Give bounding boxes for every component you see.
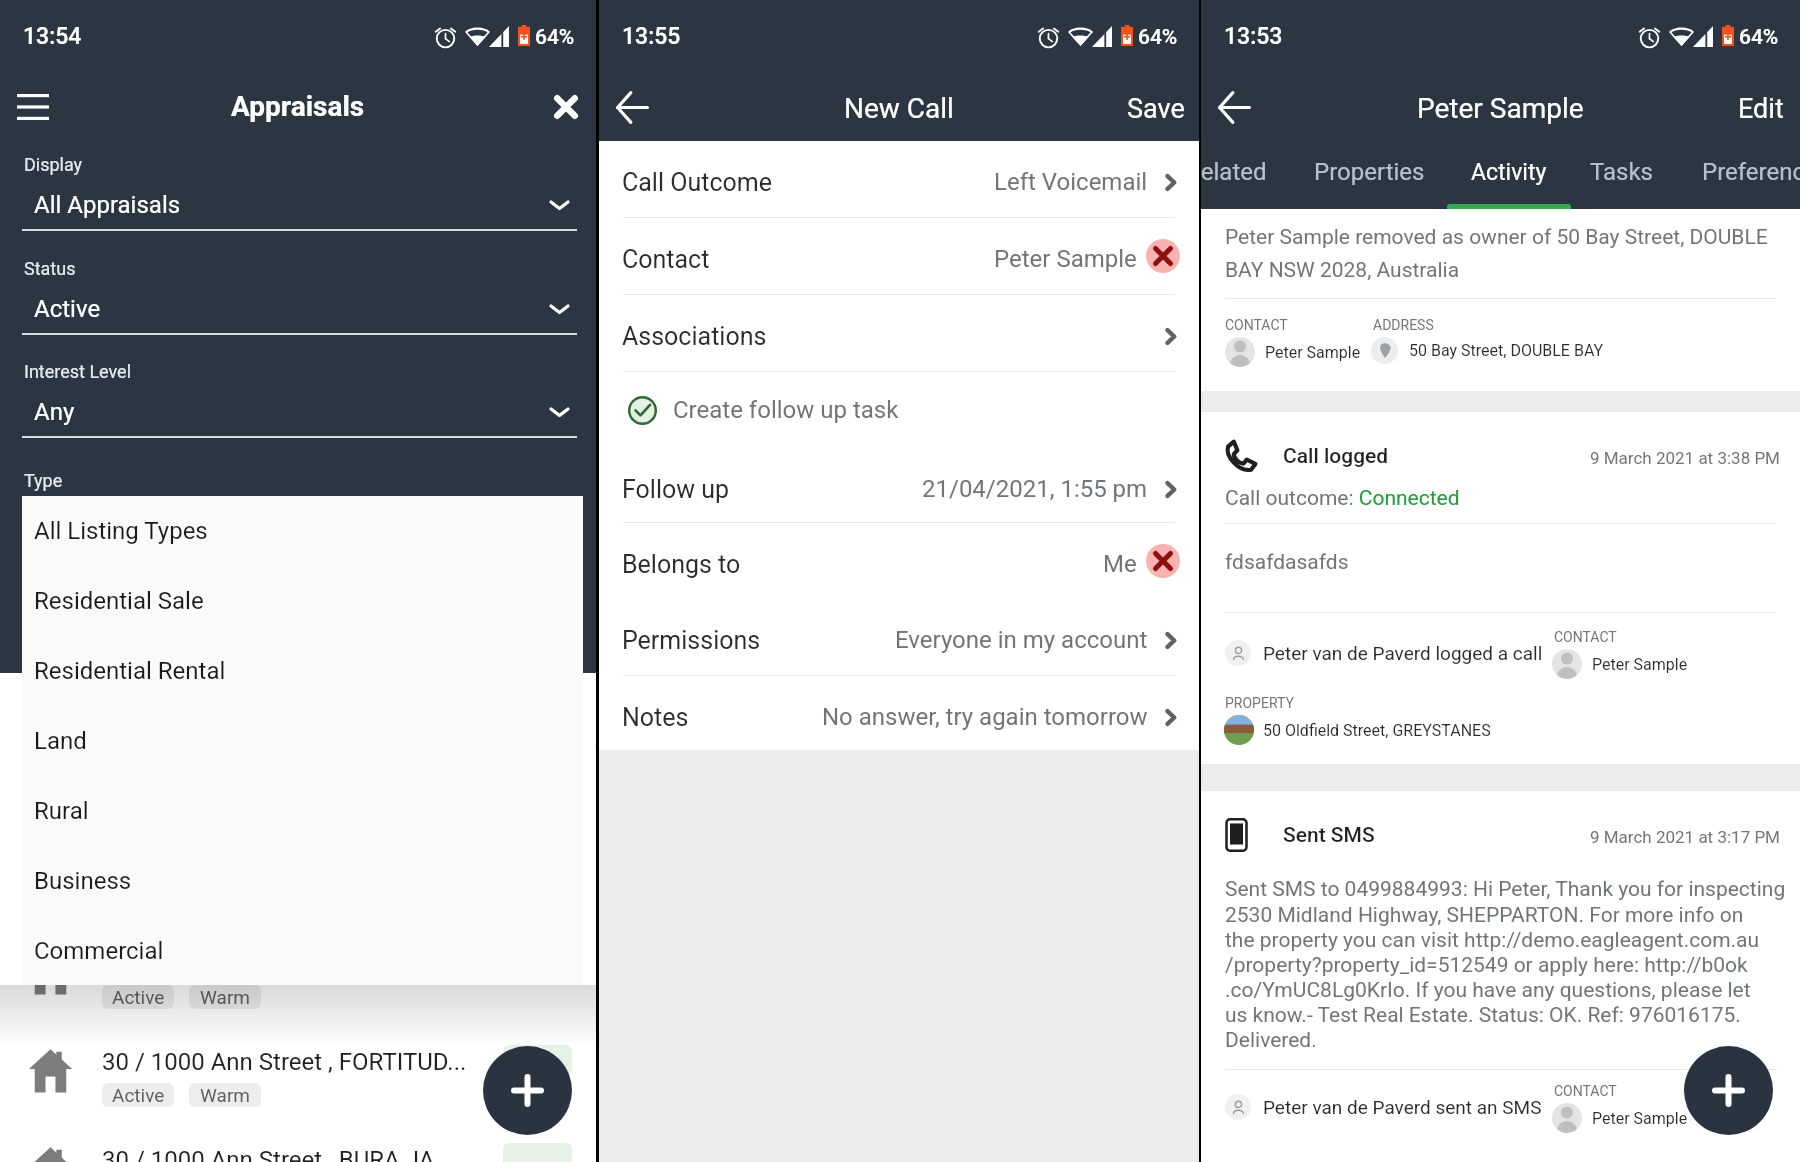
staticText: Peter Sample — [994, 245, 1137, 273]
button[interactable]: Permissions — [599, 602, 1199, 678]
staticText: 30 / 1000 Ann Street , BURA JA — [102, 1146, 502, 1162]
staticText: Contact — [622, 245, 710, 274]
staticText: Business — [34, 867, 132, 895]
button[interactable]: Save — [1127, 73, 1199, 141]
staticText: 13:53 — [1224, 23, 1283, 50]
button[interactable]: Menu — [1, 75, 65, 139]
staticText: Any — [34, 398, 75, 426]
staticText: Save — [1127, 93, 1185, 125]
button[interactable]: Commercial — [22, 916, 583, 985]
staticText: Sent SMS — [1283, 823, 1375, 848]
staticText: Permissions — [622, 626, 761, 655]
button[interactable]: Associations — [599, 298, 1199, 374]
staticText: Preferences — [1702, 158, 1800, 186]
staticText: Call Outcome — [622, 168, 772, 197]
staticText: All Appraisals — [34, 191, 181, 219]
button[interactable]: Tasks — [1580, 141, 1662, 209]
staticText: Follow up — [622, 475, 730, 504]
button[interactable]: Back — [1203, 76, 1265, 138]
staticText: 9 March 2021 at 3:38 PM — [1590, 448, 1780, 468]
staticText: All Listing Types — [34, 517, 208, 545]
staticText: Properties — [1314, 158, 1425, 186]
staticText: 30 / 1000 Ann Street , MARSDEN... — [102, 950, 502, 978]
button[interactable]: Interest Level — [0, 348, 596, 452]
staticText: Rural — [34, 797, 89, 825]
staticText: Notes — [622, 703, 689, 732]
button[interactable]: 30 / 1000 Ann Street , MARSDEN... — [0, 927, 596, 1025]
button[interactable]: Follow up — [599, 451, 1199, 527]
button[interactable]: Rural — [22, 776, 583, 846]
staticText: 50 Bay Street, DOUBLE BAY — [1409, 341, 1604, 360]
button[interactable]: Call Outcome — [599, 144, 1199, 220]
staticText: CONTACT — [1554, 1083, 1617, 1099]
button[interactable]: Display — [0, 141, 596, 245]
staticText: Interest Level — [24, 361, 132, 382]
button[interactable]: 30 / 1000 Ann Street , FORTITUD... — [0, 1025, 596, 1123]
staticText: Appraisals — [231, 90, 365, 123]
staticText: PROPERTY — [1225, 695, 1294, 711]
staticText: No answer, try again tomorrow — [822, 703, 1148, 731]
staticText: Status — [24, 258, 76, 279]
button[interactable]: Back — [601, 76, 663, 138]
button[interactable]: Status — [0, 245, 596, 349]
button[interactable]: Add — [1684, 1046, 1773, 1135]
button[interactable]: 30 / 1000 Ann Street , BURA JA — [0, 1123, 596, 1162]
staticText: Peter Sample — [1265, 343, 1361, 362]
staticText: Residential Rental — [34, 657, 226, 685]
button[interactable]: Activity — [1447, 141, 1571, 209]
button[interactable]: Land — [22, 706, 583, 776]
staticText: 30 / 1000 Ann Street , FORTITUD... — [102, 1048, 502, 1076]
staticText: Peter van de Paverd logged a call — [1263, 642, 1543, 664]
staticText: Commercial — [34, 937, 164, 965]
button[interactable]: Add — [483, 1046, 572, 1135]
staticText: Everyone in my account — [895, 626, 1148, 654]
button[interactable]: Notes — [599, 679, 1199, 755]
staticText: 9 March 2021 at 3:17 PM — [1590, 827, 1780, 847]
staticText: Tasks — [1590, 158, 1653, 186]
button[interactable]: Residential Sale — [22, 566, 583, 636]
staticText: Sent SMS to 0499884993: Hi Peter, Thank … — [1225, 877, 1786, 1052]
button[interactable]: Preferences — [1702, 141, 1800, 209]
button[interactable]: All Listing Types — [22, 496, 583, 566]
staticText: Related — [1201, 158, 1267, 186]
button[interactable]: Create follow up task — [599, 372, 1199, 448]
staticText: Create follow up task — [673, 396, 899, 424]
staticText: Left Voicemail — [994, 168, 1148, 196]
staticText: 50 Oldfield Street, GREYSTANES — [1263, 721, 1491, 740]
staticText: Active — [112, 1084, 165, 1106]
staticText: Peter van de Paverd sent an SMS — [1263, 1096, 1542, 1118]
button[interactable]: Properties — [1311, 141, 1427, 209]
button[interactable]: Contact — [599, 221, 1199, 297]
staticText: Belongs to — [622, 550, 741, 579]
staticText: Active — [34, 295, 101, 323]
button[interactable]: Close — [538, 79, 594, 135]
button[interactable]: Residential Rental — [22, 636, 583, 706]
staticText: CONTACT — [1225, 317, 1288, 333]
staticText: New Call — [844, 92, 954, 125]
staticText: Edit — [1738, 93, 1784, 125]
staticText: Type — [24, 470, 63, 491]
staticText: 13:55 — [622, 23, 681, 50]
staticText: Warm — [200, 986, 250, 1008]
staticText: ADDRESS — [1373, 317, 1434, 333]
staticText: Peter Sample — [1592, 655, 1688, 674]
staticText: Warm — [200, 1084, 250, 1106]
staticText: fdsafdasafds — [1225, 550, 1349, 575]
staticText: Peter Sample — [1417, 92, 1584, 125]
staticText: 21/04/2021, 1:55 pm — [922, 475, 1148, 503]
button[interactable]: Business — [22, 846, 583, 916]
staticText: Activity — [1471, 159, 1547, 186]
staticText: Peter Sample removed as owner of 50 Bay … — [1225, 225, 1768, 282]
staticText: Land — [34, 727, 87, 755]
staticText: Associations — [622, 322, 767, 351]
staticText: Call logged — [1283, 444, 1389, 469]
staticText: 64% — [1138, 25, 1178, 50]
staticText: Active — [112, 986, 165, 1008]
staticText: 13:54 — [23, 23, 82, 50]
staticText: 64% — [535, 25, 575, 50]
staticText: CONTACT — [1554, 629, 1617, 645]
button[interactable]: Edit — [1738, 73, 1800, 141]
button[interactable]: Related — [1201, 141, 1294, 209]
button[interactable]: Belongs to — [599, 526, 1199, 602]
staticText: Display — [24, 154, 83, 175]
